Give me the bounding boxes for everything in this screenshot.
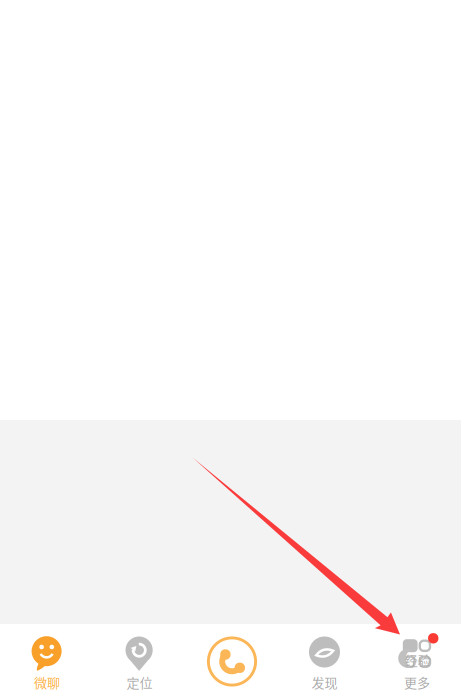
staticText: 定位: [126, 672, 152, 691]
staticText: 微聊: [34, 672, 60, 691]
button[interactable]: 微聊: [1, 624, 93, 694]
staticText: 更多: [404, 672, 430, 691]
button[interactable]: 发现: [278, 624, 371, 694]
button[interactable]: 拨号: [186, 624, 278, 694]
staticText: 经验: [405, 650, 431, 669]
staticText: 发现: [311, 672, 337, 691]
button[interactable]: 更多: [371, 624, 461, 694]
button[interactable]: 定位: [93, 624, 186, 694]
